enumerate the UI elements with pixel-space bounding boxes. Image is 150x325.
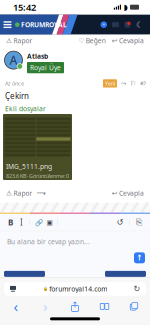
- button[interactable]: Share: [67, 299, 83, 313]
- staticText: ↺: [116, 218, 123, 227]
- staticText: 🔗: [34, 218, 42, 226]
- button[interactable]: Reload: [131, 283, 143, 295]
- staticText: IMG_5111.png: [6, 162, 52, 171]
- button[interactable]: Forward: [37, 299, 53, 313]
- button[interactable]: Post number 2: [136, 80, 146, 87]
- button[interactable]: Link: [29, 218, 42, 226]
- button[interactable]: Yeni konu aç: [4, 271, 45, 277]
- button[interactable]: Ekli dosyalar: [5, 104, 46, 113]
- button[interactable]: Tabs: [126, 299, 142, 313]
- staticText: ↩: [112, 37, 118, 44]
- staticText: Ekli dosyalar: [5, 104, 46, 113]
- staticText: ↻: [133, 284, 140, 293]
- staticText: ♡: [79, 37, 85, 44]
- button[interactable]: Italic: [13, 217, 23, 228]
- staticText: Çekirn: [5, 90, 29, 101]
- button[interactable]: Messages: [112, 22, 119, 27]
- button[interactable]: Cevap yaz: [105, 271, 146, 277]
- staticText: 15:42: [13, 1, 36, 13]
- staticText: ↩: [112, 189, 118, 197]
- staticText: ⎘: [136, 218, 142, 226]
- staticText: ▣: [46, 219, 52, 226]
- staticText: ☾: [136, 20, 143, 29]
- staticText: Rapor: [13, 189, 32, 198]
- button[interactable]: Bold: [8, 217, 13, 228]
- staticText: •••▾: [37, 190, 46, 197]
- staticText: ↑: [136, 253, 143, 262]
- staticText: Bu alana bir cevap yazın...: [7, 237, 90, 246]
- button[interactable]: Send reply: [134, 252, 145, 263]
- button[interactable]: Alerts: [124, 21, 131, 28]
- staticText: ⚠: [6, 37, 12, 44]
- staticText: Cevapla: [119, 189, 144, 198]
- button[interactable]: Insert image: [42, 219, 52, 226]
- button[interactable]: Bookmark: [126, 80, 136, 87]
- staticText: ⤳: [121, 80, 126, 87]
- staticText: #2: [140, 80, 146, 87]
- staticText: I: [20, 217, 23, 228]
- staticText: ↑: [71, 300, 78, 309]
- staticText: ⚐: [130, 80, 136, 87]
- button[interactable]: Dark mode: [136, 20, 143, 29]
- staticText: ›: [43, 297, 48, 316]
- staticText: Cevapla: [119, 36, 144, 45]
- button[interactable]: Account: [100, 21, 107, 28]
- staticText: 🔒: [43, 287, 48, 291]
- button[interactable]: Bookmarks: [96, 299, 112, 313]
- staticText: ‹: [13, 297, 18, 316]
- staticText: •: [103, 21, 105, 28]
- button[interactable]: Menu: [0, 15, 15, 35]
- button[interactable]: ⚠: [6, 189, 46, 198]
- button[interactable]: ↩: [112, 189, 144, 198]
- button[interactable]: Atlasb: [27, 52, 48, 61]
- button[interactable]: Atlasb profile: [4, 51, 23, 70]
- button[interactable]: ♡: [79, 36, 106, 45]
- staticText: Beğen: [86, 36, 106, 45]
- button[interactable]: Share: [117, 80, 126, 87]
- staticText: ◗: [123, 3, 127, 12]
- staticText: 823.6 KB · Görüntülenme: 0: [6, 172, 69, 179]
- staticText: Az önce: [5, 80, 24, 87]
- button[interactable]: Page settings: [7, 283, 19, 295]
- button[interactable]: ⚠: [6, 36, 32, 45]
- staticText: Atlasb: [27, 52, 48, 61]
- staticText: Rapor: [13, 36, 32, 45]
- staticText: FORUMROYAL: [21, 20, 67, 29]
- button[interactable]: ↩: [106, 36, 144, 45]
- staticText: B: [8, 217, 13, 228]
- button[interactable]: Back: [8, 299, 24, 313]
- button[interactable]: Undo: [116, 218, 123, 227]
- staticText: Royal Üye: [30, 63, 61, 72]
- staticText: forumroyal14.com: [49, 284, 107, 293]
- staticText: Yeni: [105, 80, 115, 87]
- button[interactable]: Preview: [130, 218, 142, 226]
- button[interactable]: Attachment IMG_5111.png: [3, 114, 72, 180]
- staticText: A: [9, 52, 17, 68]
- staticText: ⚠: [6, 189, 12, 197]
